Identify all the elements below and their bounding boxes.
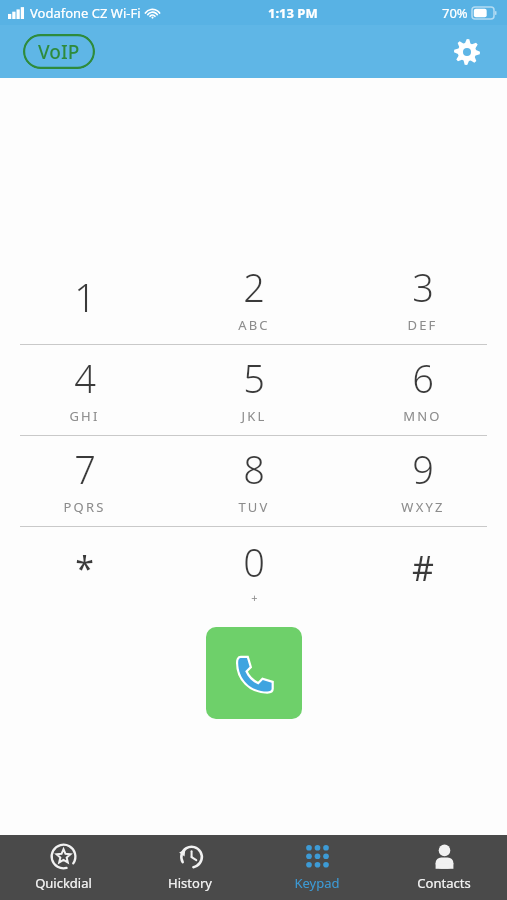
staticText: 8: [243, 443, 265, 495]
button[interactable]: Settings: [445, 30, 489, 74]
button[interactable]: Keypad: [253, 835, 380, 900]
staticText: 6: [412, 352, 434, 404]
button[interactable]: 0: [169, 527, 338, 617]
button[interactable]: 6: [338, 345, 507, 435]
staticText: *: [75, 545, 94, 591]
button[interactable]: Contacts: [380, 835, 507, 900]
staticText: +: [251, 590, 258, 605]
staticText: 9: [412, 443, 434, 495]
staticText: Contacts: [417, 874, 471, 892]
staticText: #: [412, 545, 434, 591]
button[interactable]: 4: [0, 345, 169, 435]
staticText: 70%: [442, 4, 468, 22]
button[interactable]: 8: [169, 436, 338, 526]
button[interactable]: #: [338, 527, 507, 617]
button[interactable]: 9: [338, 436, 507, 526]
button[interactable]: 2: [169, 254, 338, 344]
staticText: Quickdial: [35, 874, 92, 892]
staticText: MNO: [403, 407, 442, 425]
button[interactable]: 5: [169, 345, 338, 435]
button[interactable]: Quickdial: [0, 835, 126, 900]
staticText: 0: [243, 536, 265, 588]
button[interactable]: History: [126, 835, 253, 900]
staticText: DEF: [407, 316, 438, 334]
staticText: 7: [74, 443, 96, 495]
staticText: ABC: [238, 316, 270, 334]
staticText: GHI: [69, 407, 100, 425]
staticText: 5: [243, 352, 265, 404]
staticText: VoIP: [38, 39, 80, 65]
staticText: 1: [74, 271, 96, 323]
staticText: 3: [412, 261, 434, 313]
staticText: PQRS: [63, 498, 106, 516]
staticText: History: [168, 874, 212, 892]
button[interactable]: 3: [338, 254, 507, 344]
button[interactable]: *: [0, 527, 169, 617]
staticText: 1:13 PM: [268, 4, 318, 22]
staticText: WXYZ: [401, 498, 445, 516]
staticText: Vodafone CZ Wi-Fi: [30, 4, 141, 22]
staticText: TUV: [238, 498, 270, 516]
staticText: JKL: [241, 407, 267, 425]
staticText: 4: [74, 352, 96, 404]
staticText: 2: [243, 261, 265, 313]
button[interactable]: 1: [0, 254, 169, 344]
staticText: Keypad: [294, 874, 340, 892]
button[interactable]: Call: [206, 627, 302, 719]
button[interactable]: VoIP: [23, 34, 95, 69]
button[interactable]: 7: [0, 436, 169, 526]
